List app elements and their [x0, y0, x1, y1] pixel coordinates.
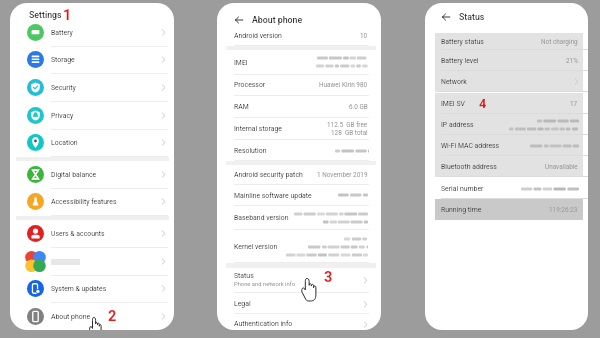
button[interactable]: Serial number: [435, 178, 583, 199]
button[interactable]: Accessibility features: [16, 188, 169, 216]
staticText: Kernel version: [234, 243, 278, 251]
staticText: Android security patch: [234, 171, 303, 179]
button[interactable]: Android version: [217, 26, 381, 46]
button[interactable]: Mainline software update: [217, 185, 381, 206]
staticText: Huawei Kirin 980: [319, 81, 368, 89]
staticText: Resolution: [234, 147, 267, 155]
button[interactable]: Kernel version: [217, 231, 381, 263]
staticText: Security: [51, 84, 76, 92]
button[interactable]: Digital balance: [16, 161, 169, 189]
button[interactable]: Privacy: [16, 102, 169, 130]
staticText: Unavailable: [545, 163, 578, 171]
button[interactable]: System & updates: [16, 275, 169, 303]
staticText: RAM: [234, 103, 249, 111]
staticText: Storage: [51, 56, 75, 64]
staticText: Status: [234, 272, 254, 280]
button[interactable]: IP address: [435, 114, 583, 135]
button[interactable]: IMEI: [217, 50, 381, 75]
button[interactable]: Internal storage: [217, 117, 381, 140]
staticText: Phone and network info: [234, 281, 296, 288]
staticText: 2: [108, 308, 117, 325]
staticText: 1 November 2019: [317, 171, 368, 179]
staticText: IMEI: [234, 59, 248, 67]
button[interactable]: Battery status: [435, 33, 583, 50]
staticText: About phone: [51, 313, 91, 321]
button[interactable]: Location: [16, 129, 169, 157]
button[interactable]: Status: [217, 267, 381, 293]
staticText: 6.0 GB: [349, 103, 368, 111]
staticText: Authentication info: [234, 320, 293, 328]
staticText: Mainline software update: [234, 192, 312, 200]
staticText: 3: [324, 269, 333, 286]
staticText: Bluetooth address: [441, 163, 497, 171]
staticText: Network: [441, 78, 467, 86]
staticText: Digital balance: [51, 171, 97, 179]
staticText: Status: [459, 12, 485, 22]
staticText: Processor: [234, 81, 266, 89]
button[interactable]: Users & accounts: [16, 220, 169, 248]
staticText: IP address: [441, 121, 474, 129]
button[interactable]: Network: [435, 71, 583, 92]
button[interactable]: RAM: [217, 96, 381, 118]
staticText: Running time: [441, 206, 482, 214]
button[interactable]: Battery level: [435, 50, 583, 71]
staticText: 112.5 GB free: [327, 121, 368, 129]
staticText: About phone: [252, 15, 303, 25]
staticText: 128 GB total: [331, 129, 368, 137]
button[interactable]: Android security patch: [217, 165, 381, 185]
button[interactable]: Security: [16, 74, 169, 102]
button[interactable]: Bluetooth address: [435, 156, 583, 177]
button[interactable]: Running time: [435, 199, 583, 220]
button[interactable]: [16, 248, 169, 276]
staticText: Users & accounts: [51, 230, 105, 238]
staticText: Privacy: [51, 112, 74, 120]
staticText: Serial number: [441, 185, 484, 193]
staticText: 4: [479, 96, 487, 111]
staticText: Wi-Fi MAC address: [441, 142, 500, 150]
staticText: 1: [63, 7, 72, 24]
staticText: IMEI SV: [441, 100, 465, 108]
staticText: Baseband version: [234, 214, 289, 222]
staticText: 17: [570, 100, 578, 108]
button[interactable]: Battery: [16, 19, 169, 47]
staticText: Battery: [51, 29, 73, 37]
staticText: Battery status: [441, 38, 484, 46]
other: Back: [235, 16, 243, 24]
staticText: 21%: [566, 57, 578, 65]
staticText: Android version: [234, 32, 282, 40]
button[interactable]: Storage: [16, 46, 169, 74]
staticText: Settings: [29, 10, 62, 20]
staticText: Not charging: [541, 38, 578, 46]
button[interactable]: Processor: [217, 74, 381, 96]
staticText: Location: [51, 139, 78, 147]
staticText: Legal: [234, 300, 251, 308]
staticText: System & updates: [51, 285, 107, 293]
button[interactable]: Baseband version: [217, 205, 381, 230]
other: Back: [442, 13, 450, 21]
staticText: Internal storage: [234, 125, 283, 133]
staticText: 119:26:23: [549, 206, 578, 214]
button[interactable]: Authentication info: [217, 314, 381, 330]
button[interactable]: Legal: [217, 294, 381, 314]
button[interactable]: Resolution: [217, 140, 381, 161]
button[interactable]: IMEI SV: [435, 93, 583, 114]
button[interactable]: About phone: [16, 303, 169, 330]
staticText: Accessibility features: [51, 198, 117, 206]
staticText: Battery level: [441, 57, 479, 65]
staticText: 10: [360, 32, 368, 40]
button[interactable]: Wi-Fi MAC address: [435, 135, 583, 156]
